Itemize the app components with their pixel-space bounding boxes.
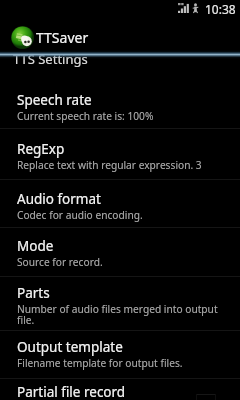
staticText: Partial file record [17, 383, 126, 400]
staticText: Codec for audio encoding. [17, 208, 143, 222]
staticText: Audio format [17, 190, 101, 208]
staticText: Source for record. [17, 255, 103, 269]
staticText: Number of audio files merged into output… [17, 302, 230, 327]
staticText: TTS Settings [13, 50, 88, 68]
staticText: Mode [17, 237, 54, 255]
button[interactable]: Mode [0, 228, 240, 277]
staticText: Filename template for output files. [17, 356, 183, 370]
staticText: RegExp [17, 140, 65, 158]
button[interactable]: Audio format [0, 180, 240, 228]
button[interactable]: Parts [0, 277, 240, 331]
staticText: 10:38 [205, 1, 236, 17]
button[interactable]: Output template [0, 331, 240, 379]
staticText: Output template [17, 338, 123, 356]
staticText: Parts [17, 284, 50, 302]
staticText: Speech rate [17, 91, 92, 109]
button[interactable]: RegExp [0, 129, 240, 180]
staticText: Current speech rate is: 100% [17, 109, 154, 123]
button[interactable]: Speech rate [0, 79, 240, 129]
staticText: Replace text with regular expression. 3 [17, 158, 202, 172]
button[interactable]: Partial file record [0, 379, 240, 400]
staticText: TTSaver [36, 28, 89, 47]
